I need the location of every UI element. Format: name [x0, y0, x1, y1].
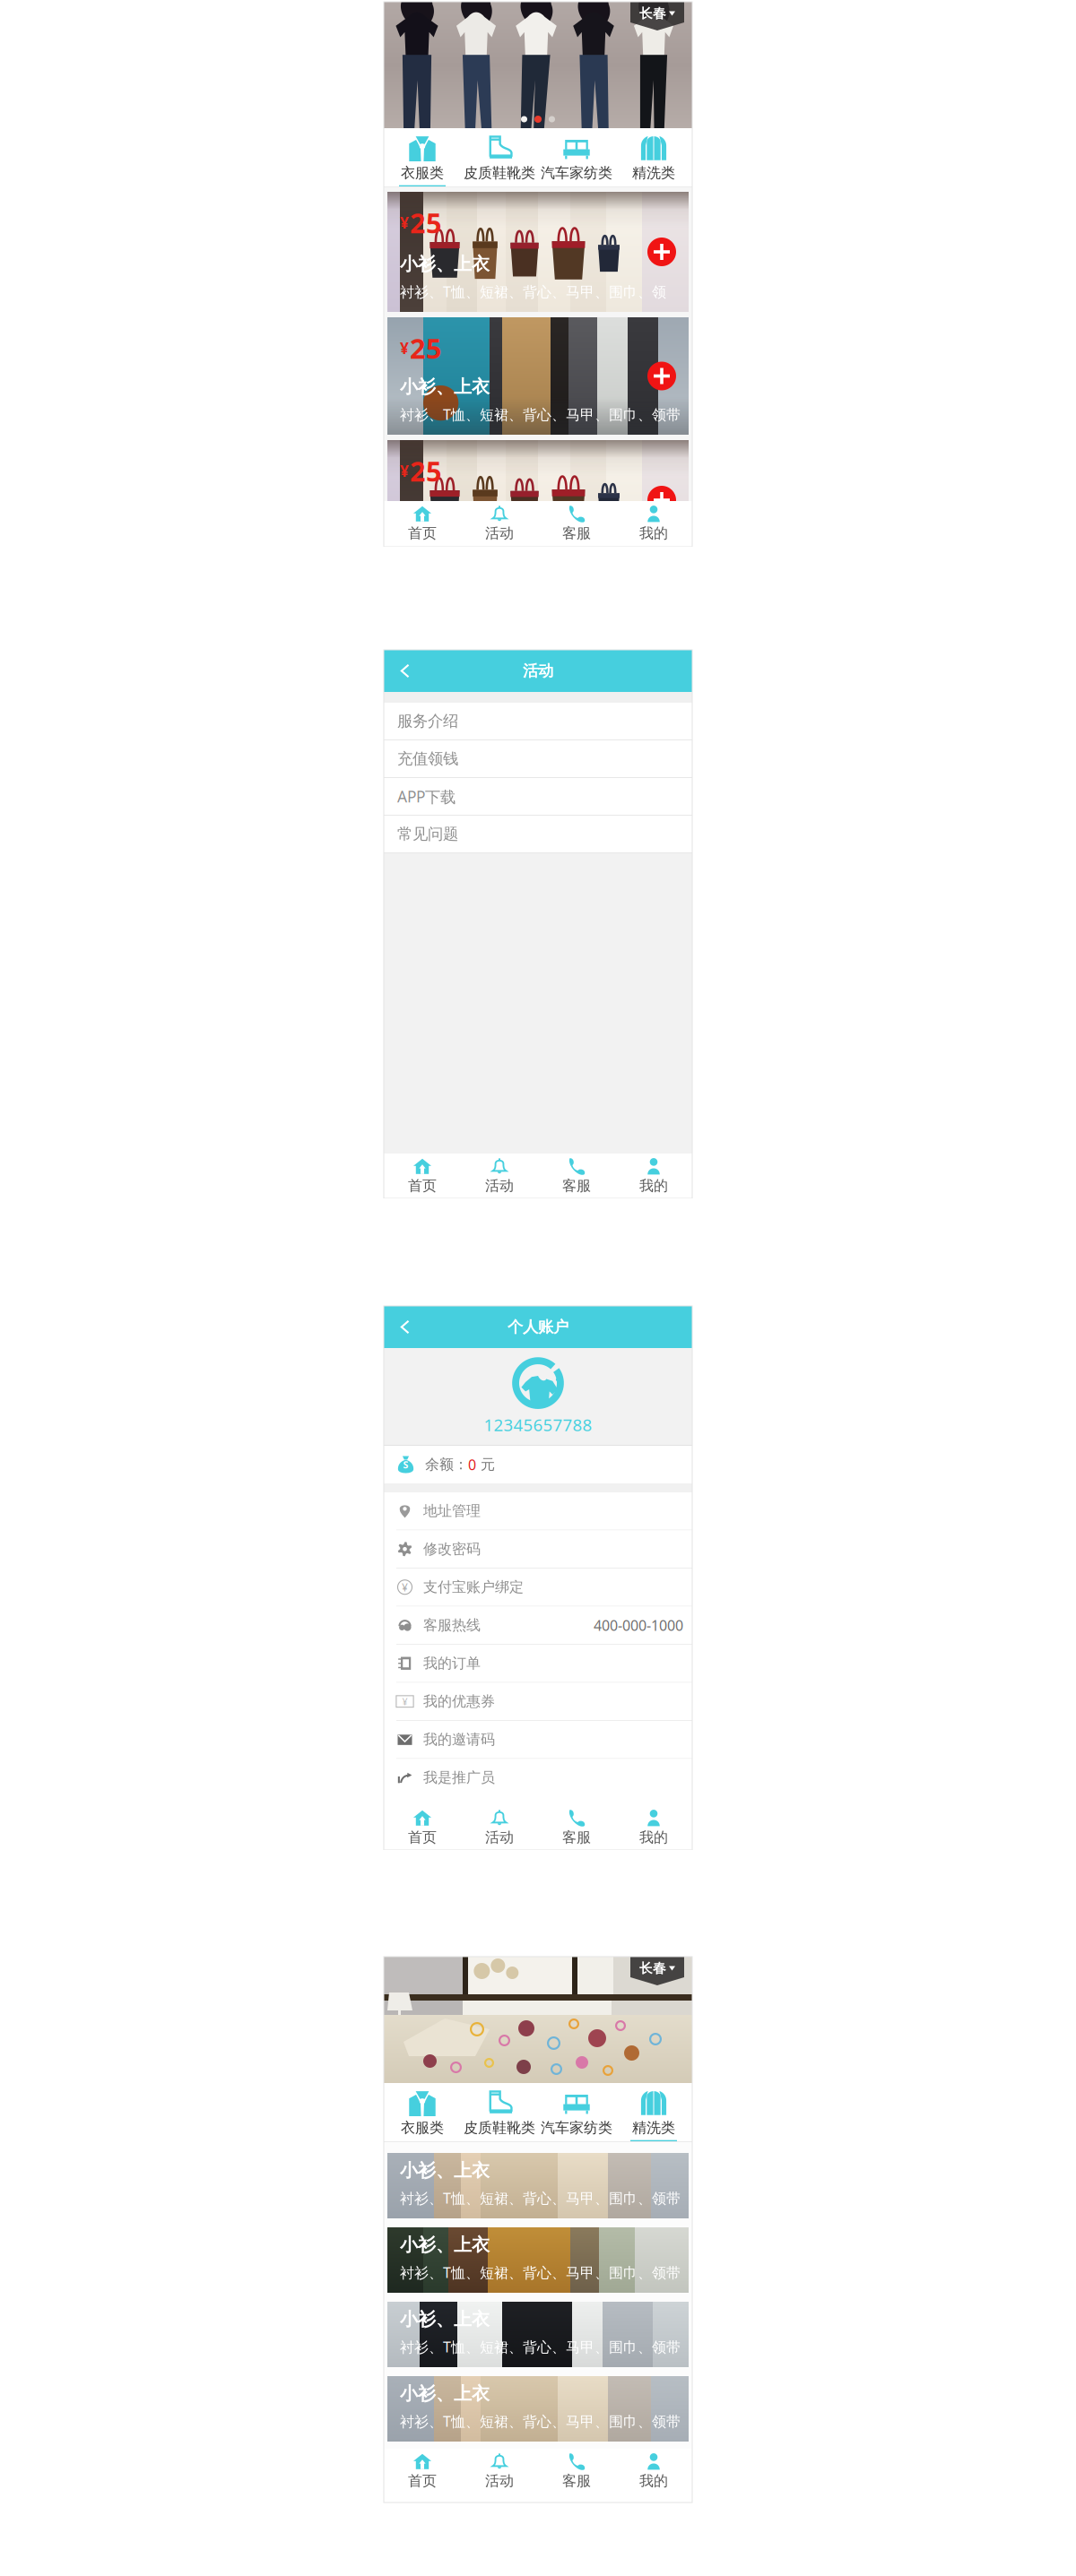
- button[interactable]: 客服: [538, 1805, 615, 1850]
- button[interactable]: Back: [389, 1309, 421, 1345]
- button[interactable]: 小衫、上衣: [387, 2153, 689, 2218]
- button[interactable]: ¥: [387, 440, 689, 560]
- staticText: 客服: [562, 2472, 591, 2490]
- button[interactable]: 精洗类: [615, 2083, 692, 2141]
- button[interactable]: 活动: [461, 1154, 538, 1198]
- button[interactable]: 小衫、上衣: [387, 2227, 689, 2293]
- staticText: 首页: [408, 1829, 437, 1846]
- staticText: 小衫、上衣: [400, 2159, 490, 2181]
- button[interactable]: ¥: [384, 1683, 692, 1720]
- staticText: 我的优惠券: [423, 1693, 495, 1710]
- button[interactable]: 我是推广员: [384, 1759, 692, 1796]
- button[interactable]: ¥: [384, 1569, 692, 1606]
- staticText: 小衫、上衣: [400, 376, 490, 398]
- button[interactable]: 皮质鞋靴类: [461, 2083, 538, 2141]
- button[interactable]: 修改密码: [384, 1530, 692, 1568]
- button[interactable]: 汽车家纺类: [538, 2083, 615, 2141]
- staticText: 客服: [562, 525, 591, 542]
- button[interactable]: 精洗类: [615, 128, 692, 186]
- staticText: 精洗类: [632, 2119, 675, 2137]
- button[interactable]: 我的: [615, 1154, 692, 1198]
- button[interactable]: 首页: [384, 1805, 461, 1850]
- button[interactable]: 衣服类: [384, 128, 461, 186]
- button[interactable]: 汽车家纺类: [538, 128, 615, 186]
- staticText: 衬衫、T恤、短裙、背心、马甲、围巾、领带: [400, 2412, 681, 2431]
- staticText: ¥: [402, 1695, 408, 1708]
- staticText: 我的: [639, 1177, 668, 1195]
- staticText: 汽车家纺类: [541, 2119, 612, 2137]
- button[interactable]: Back: [389, 653, 421, 689]
- staticText: APP下载: [397, 786, 456, 807]
- button[interactable]: 我的: [615, 501, 692, 546]
- button[interactable]: 衣服类: [384, 2083, 461, 2141]
- staticText: 我是推广员: [423, 1769, 495, 1786]
- button[interactable]: 我的订单: [384, 1645, 692, 1682]
- button[interactable]: 首页: [384, 501, 461, 546]
- staticText: 客服: [562, 1177, 591, 1195]
- staticText: 衬衫、T恤、短裙、背心、马甲、围巾、领: [400, 282, 666, 301]
- button[interactable]: 服务介绍: [384, 703, 692, 739]
- staticText: 衬衫、T恤、短裙、背心、马甲、围巾、领带: [400, 405, 681, 424]
- button[interactable]: 客服热线: [384, 1607, 692, 1644]
- button[interactable]: 首页: [384, 1154, 461, 1198]
- button[interactable]: 小衫、上衣: [387, 2302, 689, 2367]
- staticText: ¥: [402, 1580, 408, 1594]
- button[interactable]: ¥: [387, 192, 689, 312]
- button[interactable]: 我的: [615, 1805, 692, 1850]
- button[interactable]: S: [384, 1446, 692, 1483]
- staticText: 常见问题: [397, 825, 458, 844]
- staticText: 我的订单: [423, 1655, 481, 1672]
- staticText: 12345657788: [484, 1414, 592, 1436]
- staticText: 客服热线: [423, 1616, 481, 1634]
- button[interactable]: 活动: [461, 1805, 538, 1850]
- button[interactable]: 客服: [538, 1154, 615, 1198]
- staticText: 首页: [408, 2472, 437, 2490]
- button[interactable]: APP下载: [384, 778, 692, 815]
- staticText: 皮质鞋靴类: [464, 2119, 535, 2137]
- staticText: 我的: [639, 1829, 668, 1846]
- staticText: 我的: [639, 2472, 668, 2490]
- staticText: 0: [468, 1455, 476, 1474]
- button[interactable]: 我的邀请码: [384, 1721, 692, 1758]
- staticText: 衬衫、T恤、短裙、背心、马甲、围巾、领带: [400, 2189, 681, 2208]
- staticText: 长春: [639, 1960, 666, 1976]
- staticText: 25: [410, 204, 442, 241]
- button[interactable]: 皮质鞋靴类: [461, 128, 538, 186]
- button[interactable]: 小衫、上衣: [387, 2376, 689, 2442]
- staticText: 活动: [485, 1177, 514, 1195]
- staticText: 长春: [639, 5, 666, 22]
- staticText: 余额：: [425, 1456, 468, 1473]
- button[interactable]: 充值领钱: [384, 740, 692, 777]
- staticText: 小衫、上衣: [400, 2234, 490, 2256]
- button[interactable]: 客服: [538, 501, 615, 546]
- button[interactable]: 长春: [630, 1957, 684, 1985]
- button[interactable]: 长春: [630, 2, 684, 30]
- staticText: 地址管理: [423, 1502, 481, 1520]
- staticText: ¥: [400, 461, 409, 481]
- button[interactable]: 客服: [538, 2449, 615, 2494]
- button[interactable]: ¥: [387, 317, 689, 435]
- staticText: 元: [476, 1456, 495, 1473]
- staticText: 衣服类: [401, 164, 444, 182]
- staticText: 服务介绍: [397, 712, 458, 731]
- staticText: 活动: [485, 2472, 514, 2490]
- staticText: S: [403, 1458, 408, 1471]
- staticText: 小衫、上衣: [400, 501, 490, 523]
- staticText: 客服: [562, 1829, 591, 1846]
- staticText: 我的邀请码: [423, 1731, 495, 1748]
- staticText: 小衫、上衣: [400, 2308, 490, 2330]
- staticText: 皮质鞋靴类: [464, 164, 535, 182]
- staticText: 活动: [485, 1829, 514, 1846]
- button[interactable]: 常见问题: [384, 816, 692, 852]
- button[interactable]: 地址管理: [384, 1492, 692, 1530]
- staticText: 衣服类: [401, 2119, 444, 2137]
- button[interactable]: 活动: [461, 2449, 538, 2494]
- button[interactable]: 首页: [384, 2449, 461, 2494]
- staticText: 支付宝账户绑定: [423, 1578, 524, 1596]
- staticText: 活动: [523, 661, 553, 680]
- staticText: 小衫、上衣: [400, 253, 490, 275]
- staticText: 25: [410, 453, 442, 489]
- staticText: ¥: [400, 338, 409, 358]
- button[interactable]: 活动: [461, 501, 538, 546]
- button[interactable]: 我的: [615, 2449, 692, 2494]
